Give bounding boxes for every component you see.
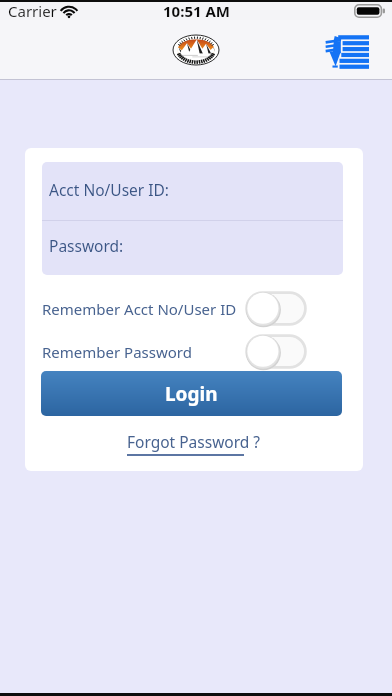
button[interactable]: Toggle switch, off (245, 334, 307, 369)
button[interactable]: Toggle switch, off (245, 291, 307, 326)
staticText: Login (165, 381, 218, 407)
button[interactable]: Sign language (325, 34, 369, 69)
staticText: 10:51 AM (163, 1, 230, 21)
staticText: Remember Password (42, 342, 192, 362)
staticText: Carrier (8, 1, 57, 21)
button[interactable]: Login (41, 371, 342, 416)
button[interactable]: Acct No/User ID: (42, 162, 343, 220)
button[interactable]: Remember Acct No/User ID (42, 291, 307, 326)
staticText: Remember Acct No/User ID (42, 299, 237, 319)
staticText: Password: (49, 235, 124, 256)
staticText: Forgot Password ? (127, 431, 261, 452)
button[interactable]: Password: (42, 221, 343, 274)
staticText: Acct No/User ID: (49, 179, 169, 200)
button[interactable]: Forgot Password ? (127, 431, 261, 452)
button[interactable]: Remember Password (42, 334, 307, 369)
